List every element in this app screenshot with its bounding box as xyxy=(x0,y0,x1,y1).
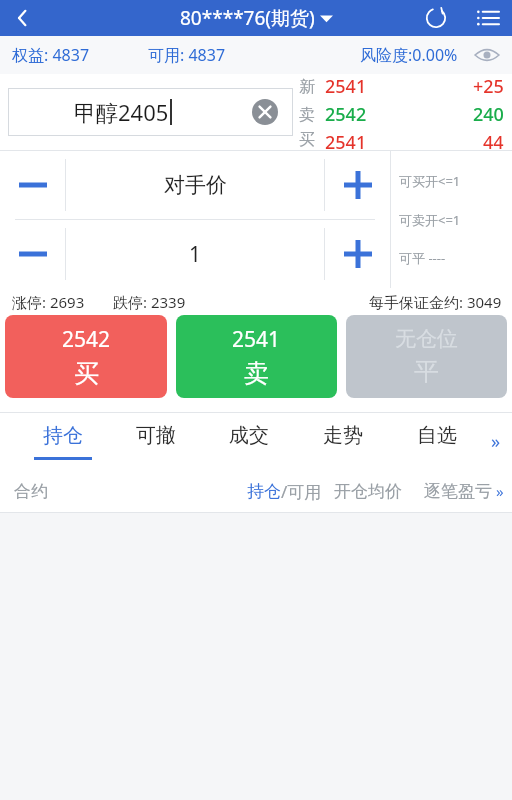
button[interactable]: Back xyxy=(0,0,46,36)
staticText: 权益: 4837 xyxy=(12,44,90,66)
button[interactable]: 无仓位 xyxy=(346,315,507,398)
staticText: 可撤 xyxy=(136,423,176,448)
staticText: » xyxy=(496,481,504,501)
staticText: 80****76(期货) xyxy=(180,5,315,31)
button[interactable]: Menu xyxy=(464,0,512,36)
button[interactable]: Decrease xyxy=(0,220,65,288)
staticText: 新 xyxy=(299,77,315,97)
button[interactable]: Refresh xyxy=(416,0,456,36)
staticText: 无仓位 xyxy=(395,326,458,352)
staticText: 44 xyxy=(483,130,504,150)
button[interactable]: 持仓 xyxy=(16,412,109,470)
staticText: 逐笔盈亏 xyxy=(424,481,492,502)
staticText: 1 xyxy=(189,240,202,269)
staticText: +25 xyxy=(473,74,504,99)
button[interactable]: More tabs xyxy=(484,412,508,470)
button[interactable]: 自选 xyxy=(390,412,484,470)
staticText: 风险度:0.00% xyxy=(360,44,458,66)
button[interactable]: 2541 xyxy=(176,315,337,398)
button[interactable]: 甲醇2405 xyxy=(8,88,293,136)
staticText: 卖 xyxy=(299,105,315,125)
staticText: 涨停: 2693 xyxy=(12,292,85,312)
staticText: 240 xyxy=(473,102,504,127)
staticText: 2541 xyxy=(325,74,367,99)
staticText: 可卖开<=1 xyxy=(399,211,461,229)
button[interactable]: Toggle visibility xyxy=(472,40,502,70)
staticText: 持仓 xyxy=(43,423,83,448)
button[interactable]: Clear xyxy=(237,88,293,136)
button[interactable]: 成交 xyxy=(202,412,296,470)
staticText: 跌停: 2339 xyxy=(113,292,186,312)
staticText: 2541 xyxy=(232,325,281,354)
staticText: 平 xyxy=(414,356,439,387)
staticText: 可平 ---- xyxy=(399,249,446,267)
staticText: 买 xyxy=(74,358,99,389)
button[interactable]: 可撤 xyxy=(109,412,202,470)
staticText: 开仓均价 xyxy=(334,481,402,502)
button[interactable]: Decrease xyxy=(0,151,65,219)
staticText: 持仓 xyxy=(247,481,281,502)
staticText: 自选 xyxy=(417,423,457,448)
staticText: 卖 xyxy=(244,358,269,389)
staticText: 合约 xyxy=(14,481,48,502)
button[interactable]: More columns xyxy=(492,470,508,512)
staticText: » xyxy=(491,429,501,454)
staticText: /可用 xyxy=(281,480,322,503)
staticText: 甲醇2405 xyxy=(74,97,169,127)
staticText: 可用: 4837 xyxy=(148,44,226,66)
staticText: 对手价 xyxy=(164,172,227,198)
button[interactable]: Increase xyxy=(325,151,390,219)
staticText: 可买开<=1 xyxy=(399,172,461,190)
staticText: 买 xyxy=(299,130,315,150)
staticText: 成交 xyxy=(229,423,269,448)
staticText: 2541 xyxy=(325,130,367,150)
button[interactable]: 80****76(期货) xyxy=(180,5,333,31)
staticText: 走势 xyxy=(323,423,363,448)
button[interactable]: 走势 xyxy=(296,412,390,470)
staticText: 2542 xyxy=(325,102,367,127)
button[interactable]: 2542 xyxy=(5,315,167,398)
staticText: 每手保证金约: 3049 xyxy=(369,292,502,312)
button[interactable]: Increase xyxy=(325,220,390,288)
staticText: 2542 xyxy=(62,325,111,354)
